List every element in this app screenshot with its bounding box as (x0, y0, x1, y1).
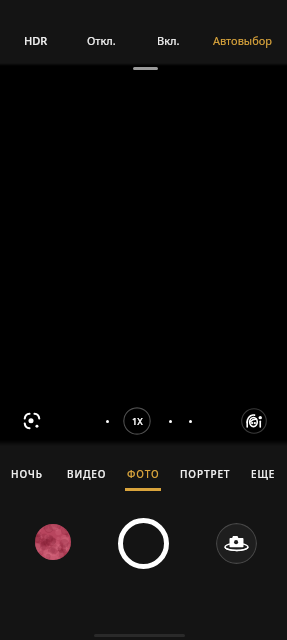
button[interactable]: AI scene detection (21, 410, 43, 432)
button[interactable]: Gallery (35, 524, 71, 560)
staticText: ФОТО (127, 467, 160, 481)
button[interactable]: Откл. (86, 30, 117, 51)
button[interactable]: Switch camera (216, 523, 257, 564)
staticText: НОЧЬ (11, 467, 43, 481)
button[interactable]: НОЧЬ (5, 458, 49, 500)
button[interactable]: ФОТО (121, 458, 165, 500)
button[interactable]: ЕЩЕ (244, 458, 282, 500)
button[interactable]: Shutter (118, 518, 169, 569)
staticText: ЕЩЕ (251, 467, 276, 481)
staticText: Откл. (87, 33, 116, 48)
staticText: Автовыбор (213, 33, 272, 48)
button[interactable]: 1X (123, 407, 151, 435)
button[interactable]: HDR (23, 30, 49, 51)
staticText: Вкл. (157, 33, 180, 48)
button[interactable]: Автовыбор (212, 30, 273, 51)
staticText: ВИДЕО (67, 467, 107, 481)
staticText: 1X (132, 415, 143, 427)
button[interactable]: ВИДЕО (62, 458, 112, 500)
button[interactable]: Beauty filters (241, 408, 267, 434)
staticText: HDR (24, 33, 48, 48)
staticText: ПОРТРЕТ (180, 467, 231, 481)
button[interactable]: Вкл. (156, 30, 181, 51)
button[interactable]: ПОРТРЕТ (174, 458, 236, 500)
